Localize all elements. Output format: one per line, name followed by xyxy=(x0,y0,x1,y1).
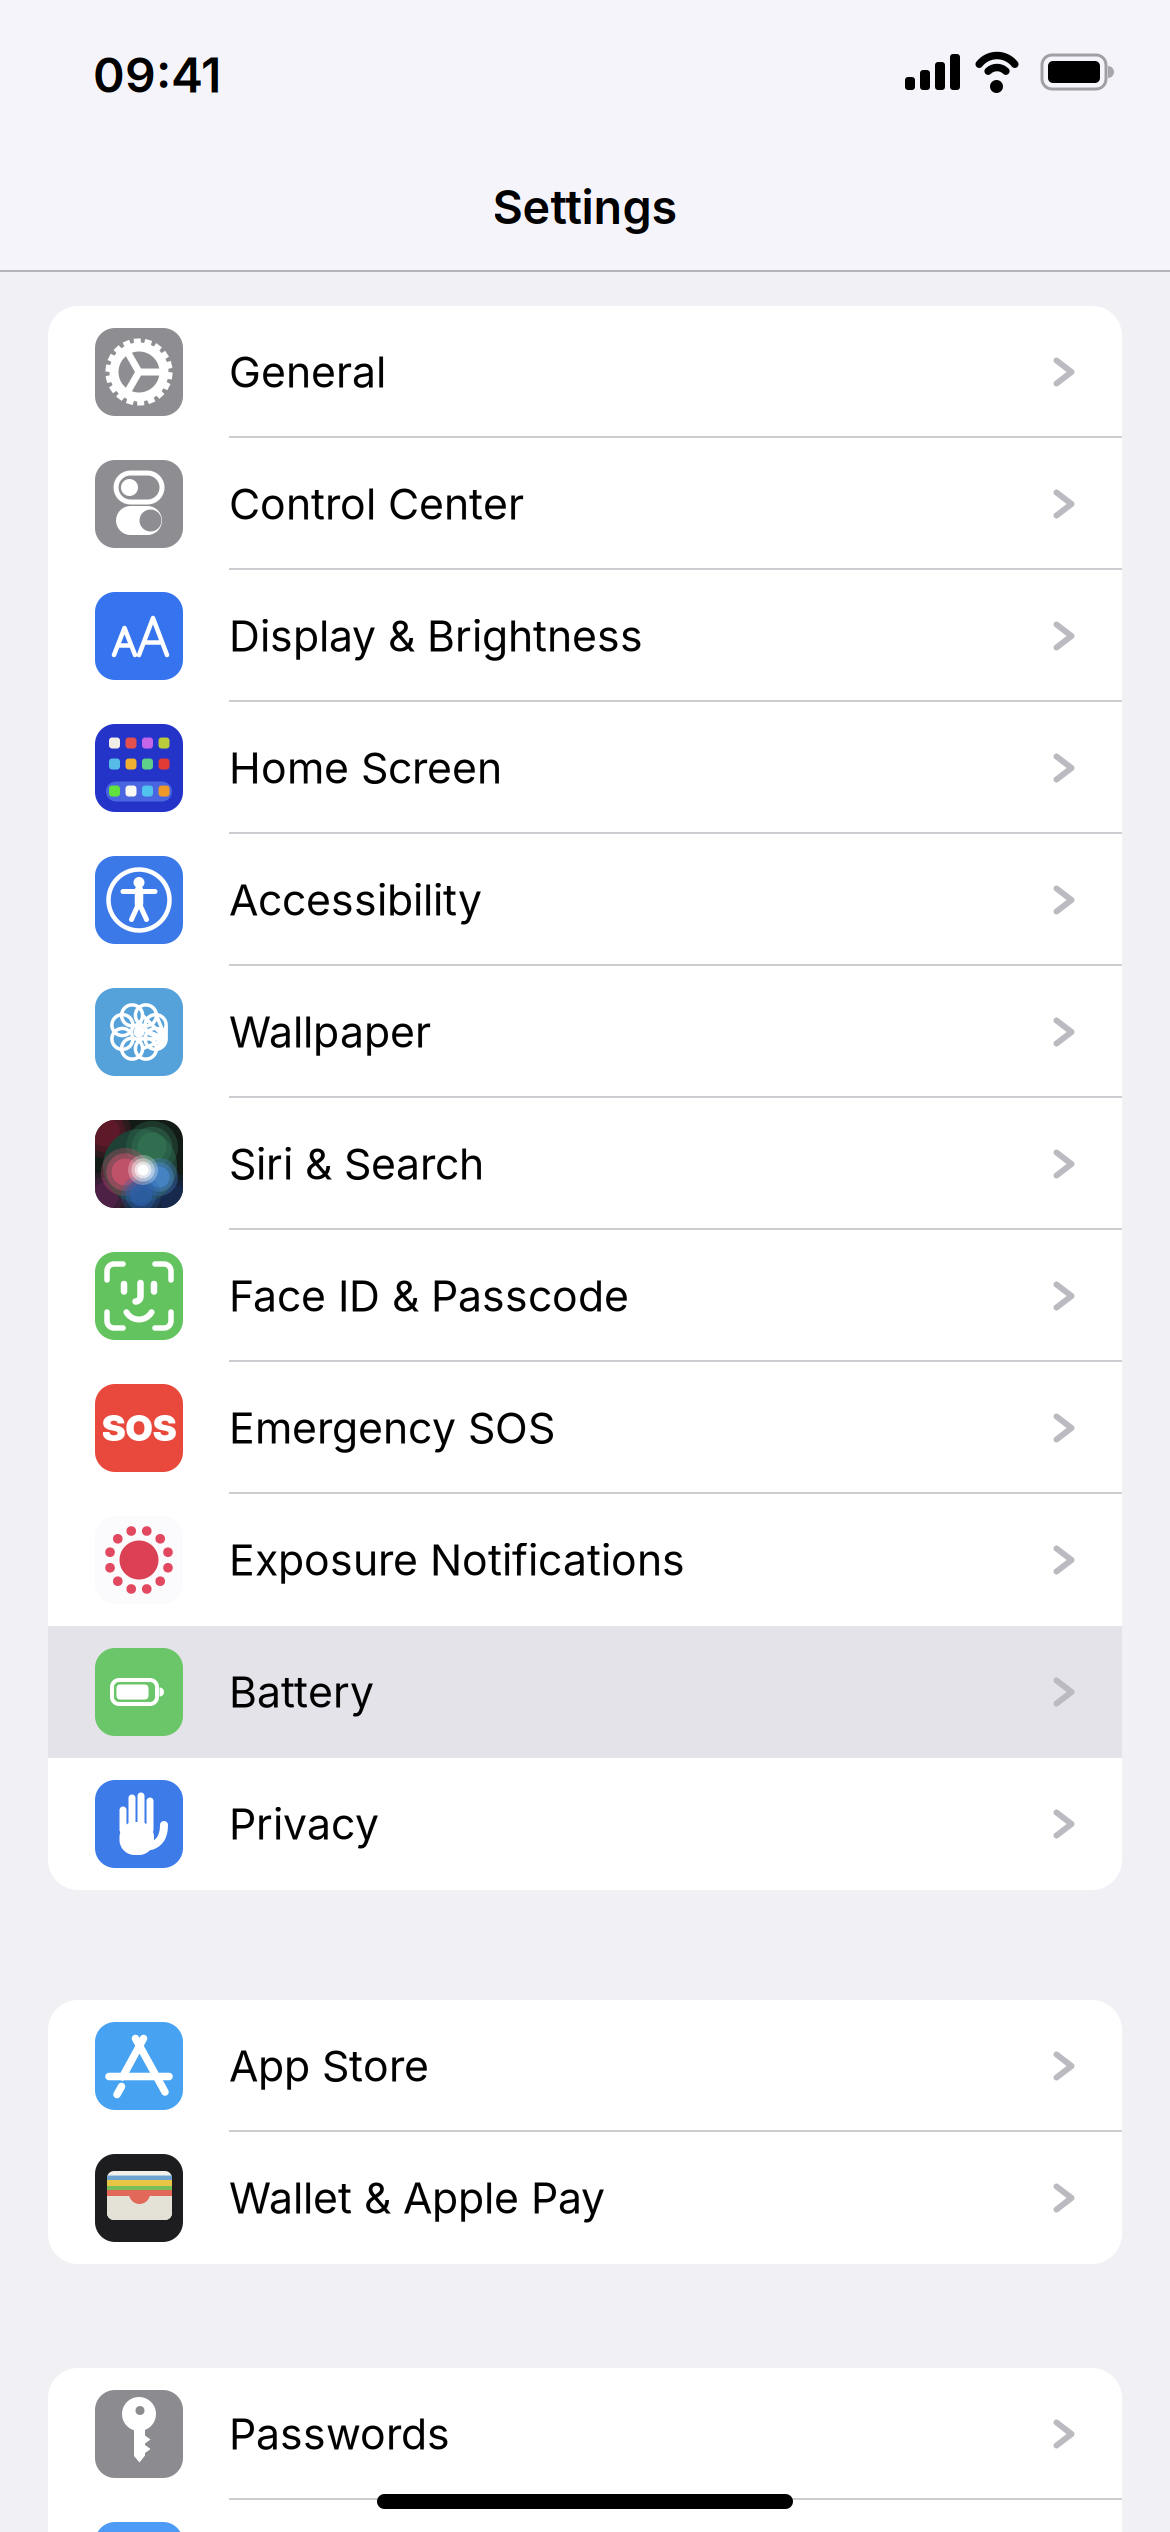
staticText: Control Center xyxy=(229,479,524,529)
staticText: Siri & Search xyxy=(229,1139,484,1189)
staticText: Wallpaper xyxy=(229,1007,431,1057)
button[interactable]: General xyxy=(48,306,1122,438)
staticText: Accessibility xyxy=(229,875,482,925)
staticText: General xyxy=(229,347,386,397)
button[interactable]: Face ID & Passcode xyxy=(48,1230,1122,1362)
button[interactable]: Passwords xyxy=(48,2368,1122,2500)
button[interactable]: Wallpaper xyxy=(48,966,1122,1098)
staticText: Home Screen xyxy=(229,743,502,793)
staticText: 09:41 xyxy=(93,47,221,103)
button[interactable]: App Store xyxy=(48,2000,1122,2132)
button[interactable]: Battery xyxy=(48,1626,1122,1758)
button[interactable]: Wallet & Apple Pay xyxy=(48,2132,1122,2264)
staticText: Exposure Notifications xyxy=(229,1535,685,1585)
staticText: SOS xyxy=(101,1407,176,1449)
button[interactable]: Mail xyxy=(48,2500,1122,2532)
button[interactable]: Privacy xyxy=(48,1758,1122,1890)
staticText: Passwords xyxy=(229,2409,450,2459)
staticText: App Store xyxy=(229,2041,429,2091)
staticText: Wallet & Apple Pay xyxy=(229,2173,605,2223)
staticText: Emergency SOS xyxy=(229,1403,555,1453)
staticText: Display & Brightness xyxy=(229,611,643,661)
staticText: Face ID & Passcode xyxy=(229,1271,629,1321)
button[interactable]: Home Screen xyxy=(48,702,1122,834)
button[interactable]: Siri & Search xyxy=(48,1098,1122,1230)
button[interactable]: Exposure Notifications xyxy=(48,1494,1122,1626)
button[interactable]: SOS xyxy=(48,1362,1122,1494)
staticText: Settings xyxy=(492,179,677,235)
staticText: Battery xyxy=(229,1667,374,1717)
button[interactable]: Accessibility xyxy=(48,834,1122,966)
button[interactable]: Control Center xyxy=(48,438,1122,570)
staticText: Privacy xyxy=(229,1799,379,1849)
button[interactable]: Display & Brightness xyxy=(48,570,1122,702)
